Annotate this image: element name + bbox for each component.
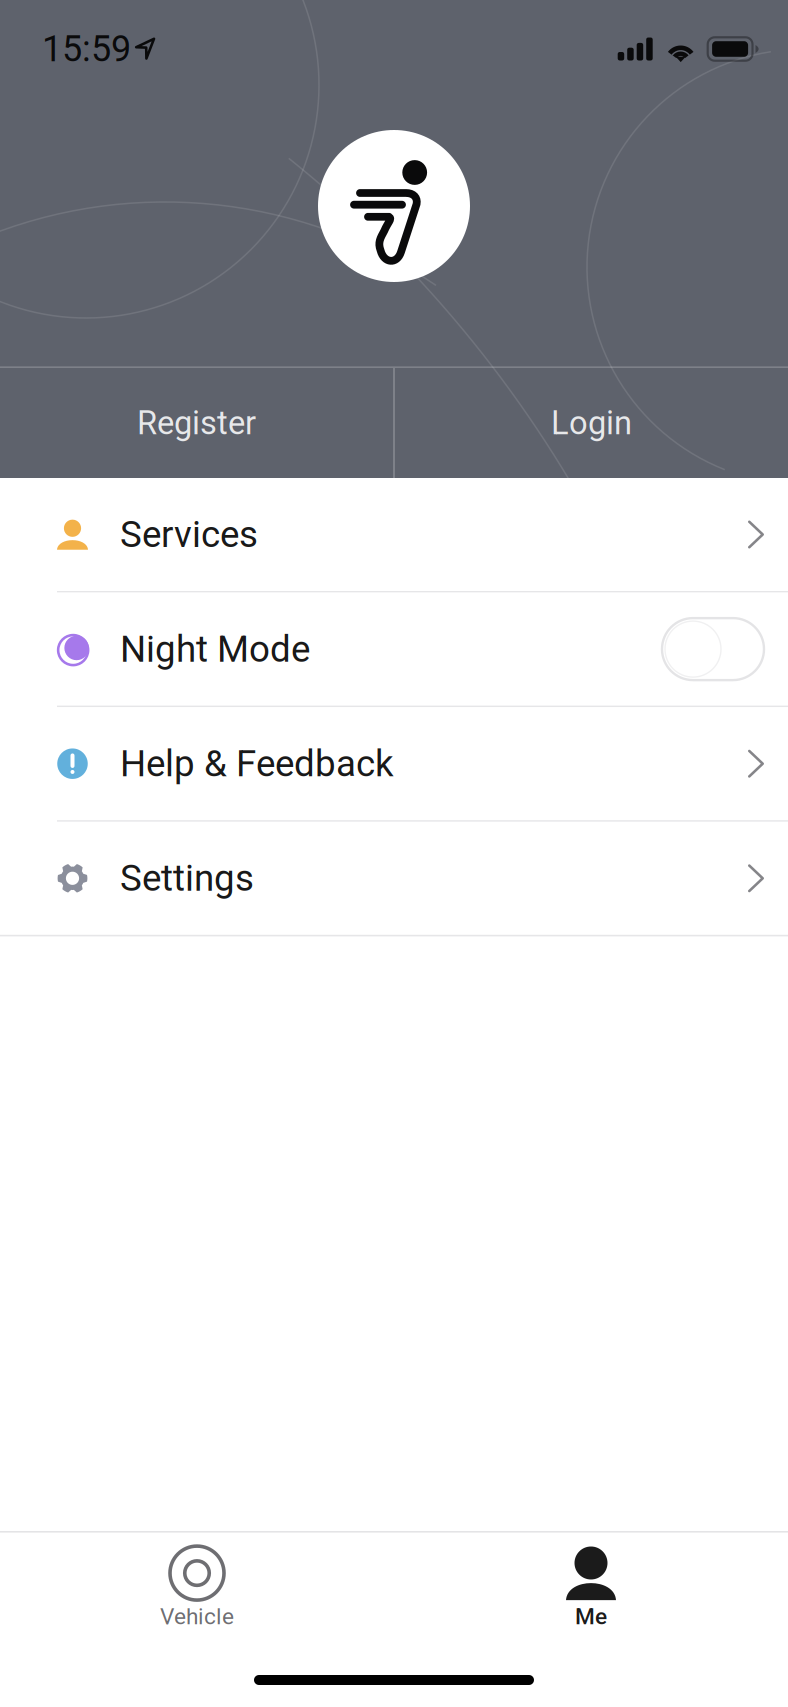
button[interactable]: Register — [0, 368, 393, 478]
staticText: Vehicle — [160, 1603, 234, 1630]
button[interactable]: Vehicle — [0, 1546, 394, 1642]
button[interactable]: Night Mode — [0, 593, 788, 707]
button[interactable]: Settings — [0, 822, 788, 936]
staticText: Login — [551, 404, 632, 442]
staticText: Night Mode — [120, 628, 310, 671]
button[interactable]: Me — [394, 1546, 788, 1642]
button[interactable]: Help & Feedback — [0, 707, 788, 822]
staticText: Register — [137, 404, 256, 442]
staticText: Me — [575, 1603, 607, 1630]
staticText: 15:59 — [42, 28, 131, 70]
button[interactable]: Login — [395, 368, 788, 478]
button[interactable]: Services — [0, 478, 788, 593]
staticText: Services — [120, 513, 258, 556]
staticText: Settings — [120, 857, 254, 900]
staticText: Help & Feedback — [120, 742, 394, 785]
